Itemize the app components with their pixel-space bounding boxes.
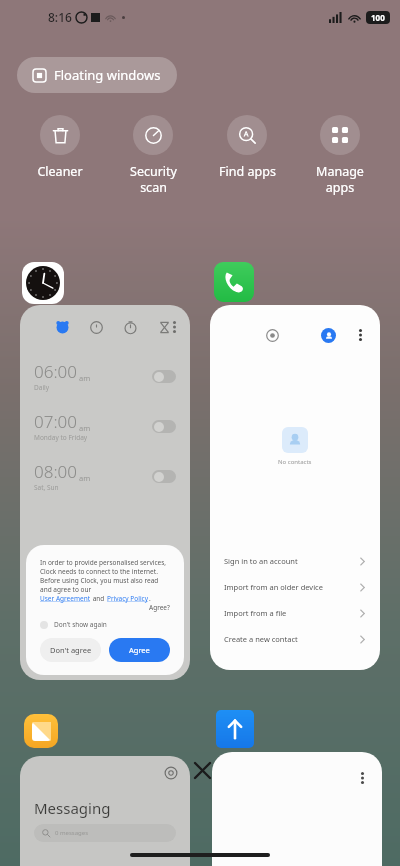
button[interactable]: [152, 470, 176, 483]
staticText: Messaging: [34, 798, 111, 818]
staticText: Import from a file: [224, 608, 287, 618]
staticText: am: [79, 423, 91, 433]
staticText: Find apps: [219, 163, 276, 180]
button[interactable]: Sign in to an account: [210, 548, 380, 574]
button[interactable]: Find apps: [203, 115, 291, 180]
staticText: 08:00: [34, 460, 77, 483]
staticText: Monday to Friday: [34, 433, 88, 442]
button[interactable]: Manage apps: [296, 115, 384, 195]
staticText: and: [91, 594, 107, 603]
button[interactable]: Create a new contact: [210, 626, 380, 652]
staticText: No contacts: [278, 458, 312, 466]
button[interactable]: Clock: [22, 262, 64, 304]
button[interactable]: Settings: [20, 756, 190, 866]
button[interactable]: More options: [171, 319, 178, 335]
button[interactable]: More options: [354, 770, 370, 786]
button[interactable]: Don't show again: [40, 620, 107, 629]
staticText: 100: [371, 12, 385, 23]
staticText: 0 messages: [55, 829, 89, 837]
button[interactable]: More options: [20, 305, 190, 680]
button[interactable]: 06:00: [20, 351, 190, 401]
button[interactable]: [152, 420, 176, 433]
button[interactable]: Agree: [109, 638, 170, 662]
button[interactable]: 07:00: [20, 401, 190, 451]
staticText: Floating windows: [54, 66, 161, 84]
staticText: am: [79, 373, 91, 383]
staticText: Don't show again: [54, 620, 107, 629]
staticText: Agree: [129, 645, 150, 655]
staticText: Sat, Sun: [34, 483, 59, 492]
button[interactable]: Privacy Policy: [107, 594, 149, 603]
button[interactable]: User Agreement: [40, 594, 91, 603]
button[interactable]: Phone: [214, 262, 254, 302]
staticText: Don't agree: [50, 645, 92, 655]
button[interactable]: Import from a file: [210, 600, 380, 626]
staticText: Manage apps: [316, 163, 364, 195]
button[interactable]: Floating windows: [17, 57, 177, 93]
button[interactable]: More options: [212, 752, 382, 866]
button[interactable]: More options: [352, 327, 368, 343]
button[interactable]: Messaging: [24, 714, 58, 748]
staticText: . Agree?: [149, 594, 170, 612]
button[interactable]: [152, 370, 176, 383]
staticText: Sign in to an account: [224, 556, 298, 566]
staticText: Cleaner: [37, 163, 83, 180]
button[interactable]: Cleaner: [16, 115, 104, 180]
button[interactable]: Import from an older device: [210, 574, 380, 600]
button[interactable]: Settings: [164, 766, 178, 780]
button[interactable]: 08:00: [20, 451, 190, 501]
button[interactable]: Upload: [216, 710, 254, 748]
staticText: 06:00: [34, 360, 77, 383]
staticText: Create a new contact: [224, 634, 298, 644]
staticText: Import from an older device: [224, 582, 323, 592]
staticText: In order to provide personalised service…: [40, 558, 170, 594]
staticText: Security scan: [130, 163, 177, 195]
staticText: am: [79, 473, 91, 483]
button[interactable]: Security scan: [109, 115, 197, 195]
staticText: 8:16: [48, 9, 72, 25]
button[interactable]: Don't agree: [40, 638, 101, 662]
staticText: Daily: [34, 383, 50, 392]
button[interactable]: More options: [210, 305, 380, 670]
button[interactable]: 0 messages: [34, 824, 176, 842]
button[interactable]: Close: [189, 757, 215, 783]
staticText: 07:00: [34, 410, 77, 433]
